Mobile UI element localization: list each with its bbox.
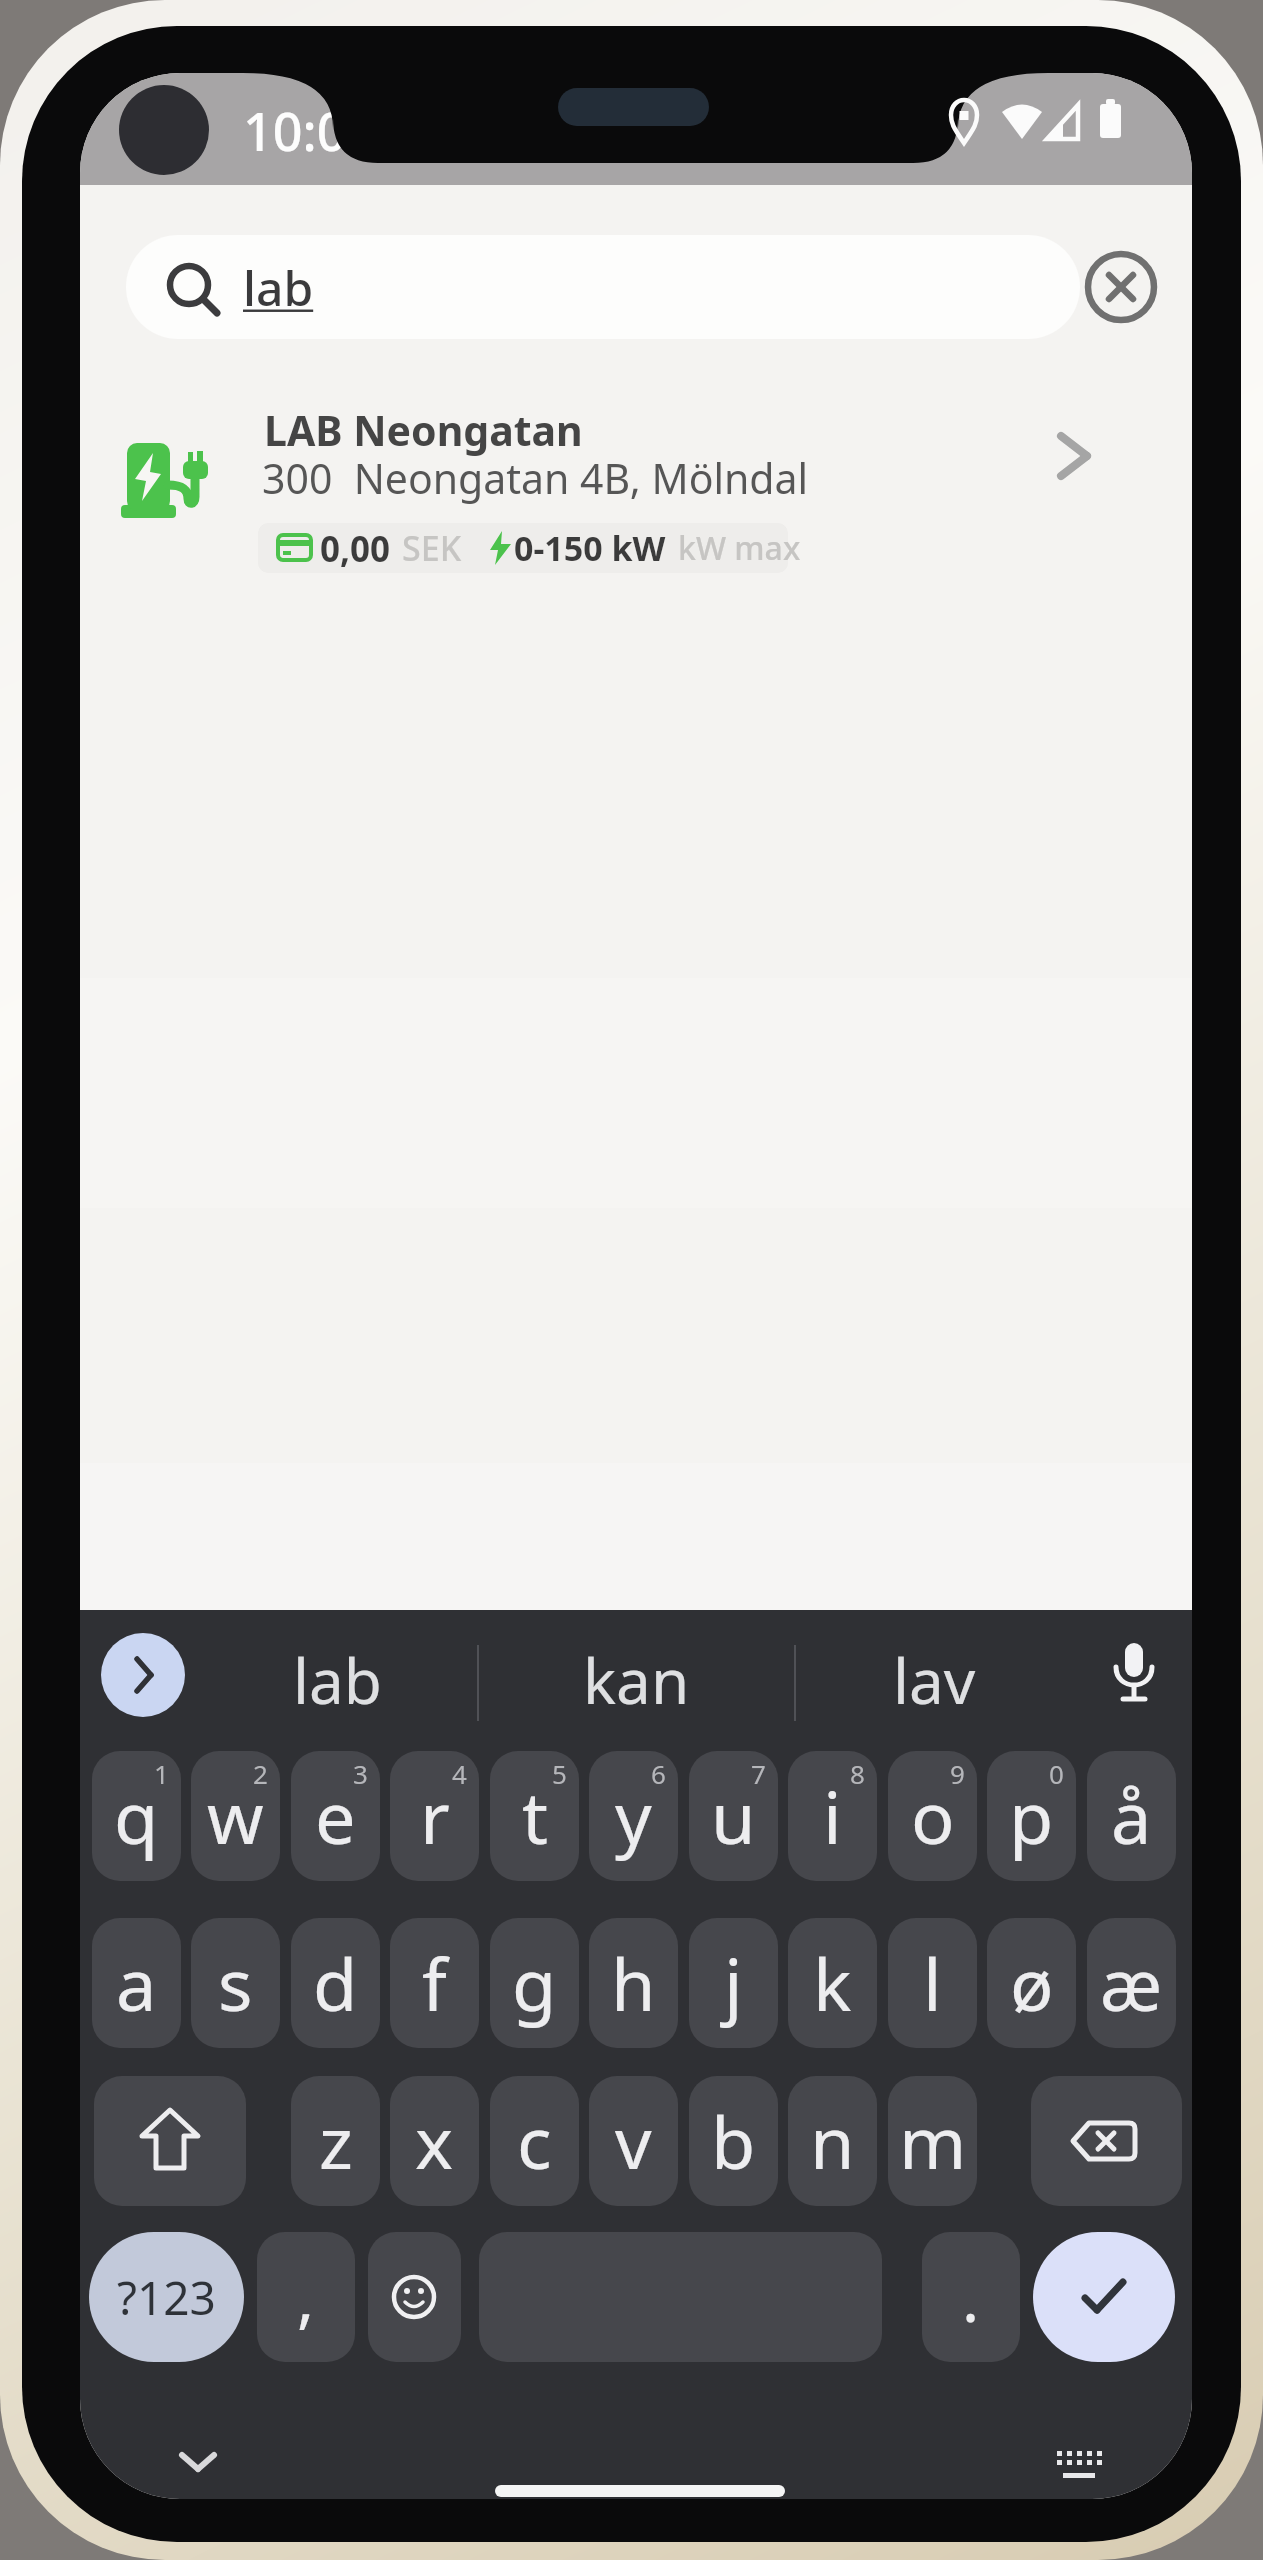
button[interactable]: t — [490, 1751, 579, 1881]
button[interactable]: d — [291, 1918, 380, 2048]
button[interactable]: f — [390, 1918, 479, 2048]
button[interactable]: o — [888, 1751, 977, 1881]
button[interactable]: i — [788, 1751, 877, 1881]
button[interactable] — [1085, 251, 1157, 323]
button[interactable] — [1033, 2232, 1175, 2362]
button[interactable]: m — [888, 2076, 977, 2206]
staticText: l — [923, 1934, 942, 2032]
button[interactable] — [1045, 2439, 1115, 2489]
staticText: lav — [893, 1638, 976, 1718]
button[interactable]: e — [291, 1751, 380, 1881]
button[interactable]: u — [689, 1751, 778, 1881]
button[interactable]: ?123 — [89, 2232, 244, 2362]
button[interactable] — [126, 235, 1080, 339]
staticText: 10:01 — [243, 95, 377, 166]
staticText: n — [810, 2092, 855, 2190]
button[interactable] — [100, 393, 1172, 583]
staticText: t — [522, 1767, 548, 1865]
staticText: 0 — [1049, 1756, 1064, 1791]
staticText: h — [611, 1934, 656, 2032]
staticText: f — [422, 1934, 447, 2032]
staticText: j — [724, 1934, 743, 2032]
button[interactable]: j — [689, 1918, 778, 2048]
staticText: 9 — [950, 1756, 965, 1791]
staticText: q — [114, 1767, 159, 1865]
button[interactable]: , — [257, 2232, 355, 2362]
staticText: 300 Neongatan 4B, Mölndal — [262, 450, 809, 506]
staticText: SEK — [402, 525, 462, 571]
button[interactable]: lab — [243, 243, 363, 331]
staticText: 1 — [154, 1756, 169, 1791]
staticText: 7 — [751, 1756, 766, 1791]
staticText: 3 — [353, 1756, 368, 1791]
button[interactable]: . — [922, 2232, 1020, 2362]
staticText: i — [823, 1767, 842, 1865]
staticText: v — [615, 2092, 652, 2190]
staticText: p — [1009, 1767, 1054, 1865]
button[interactable]: l — [888, 1918, 977, 2048]
staticText: k — [813, 1934, 852, 2032]
staticText: b — [711, 2092, 756, 2190]
staticText: . — [962, 2254, 980, 2341]
staticText: æ — [1100, 1934, 1163, 2032]
button[interactable]: y — [589, 1751, 678, 1881]
staticText: lab — [293, 1638, 382, 1718]
staticText: 2 — [253, 1756, 268, 1791]
staticText: kW max — [678, 526, 801, 570]
staticText: ø — [1010, 1934, 1054, 2032]
staticText: 5 — [552, 1756, 567, 1791]
staticText: 0-150 kW — [514, 525, 666, 571]
staticText: å — [1111, 1767, 1152, 1865]
button[interactable]: p — [987, 1751, 1076, 1881]
button[interactable]: æ — [1087, 1918, 1176, 2048]
staticText: s — [218, 1934, 253, 2032]
button[interactable]: k — [788, 1918, 877, 2048]
staticText: , — [297, 2254, 315, 2341]
button[interactable]: å — [1087, 1751, 1176, 1881]
button[interactable]: r — [390, 1751, 479, 1881]
staticText: u — [711, 1767, 756, 1865]
button[interactable]: z — [291, 2076, 380, 2206]
button[interactable]: c — [490, 2076, 579, 2206]
button[interactable]: n — [788, 2076, 877, 2206]
button[interactable]: kan — [536, 1638, 736, 1718]
staticText: a — [116, 1934, 157, 2032]
button[interactable]: b — [689, 2076, 778, 2206]
button[interactable] — [94, 2076, 246, 2206]
button[interactable]: lab — [237, 1638, 437, 1718]
button[interactable] — [101, 1633, 185, 1717]
staticText: lab — [243, 255, 314, 320]
staticText: LAB Neongatan — [264, 402, 583, 458]
staticText: z — [319, 2092, 353, 2190]
button[interactable] — [1031, 2076, 1182, 2206]
button[interactable]: v — [589, 2076, 678, 2206]
staticText: m — [899, 2092, 967, 2190]
button[interactable]: q — [92, 1751, 181, 1881]
button[interactable] — [168, 2441, 228, 2485]
staticText: 4 — [452, 1756, 467, 1791]
staticText: ?123 — [117, 2266, 216, 2329]
staticText: 0,00 — [320, 525, 391, 571]
button[interactable]: x — [390, 2076, 479, 2206]
staticText: 8 — [850, 1756, 865, 1791]
staticText: e — [315, 1767, 356, 1865]
button[interactable]: g — [490, 1918, 579, 2048]
staticText: c — [517, 2092, 552, 2190]
staticText: g — [512, 1934, 557, 2032]
button[interactable]: h — [589, 1918, 678, 2048]
button[interactable]: ø — [987, 1918, 1076, 2048]
staticText: o — [911, 1767, 955, 1865]
staticText: kan — [583, 1638, 690, 1718]
button[interactable]: a — [92, 1918, 181, 2048]
button[interactable]: w — [191, 1751, 280, 1881]
staticText: w — [207, 1767, 264, 1865]
button[interactable]: lav — [834, 1638, 1034, 1718]
staticText: 6 — [651, 1756, 666, 1791]
staticText: r — [420, 1767, 450, 1865]
staticText: x — [415, 2092, 454, 2190]
staticText: d — [313, 1934, 358, 2032]
button[interactable] — [368, 2232, 461, 2362]
staticText: y — [615, 1767, 652, 1865]
button[interactable]: s — [191, 1918, 280, 2048]
